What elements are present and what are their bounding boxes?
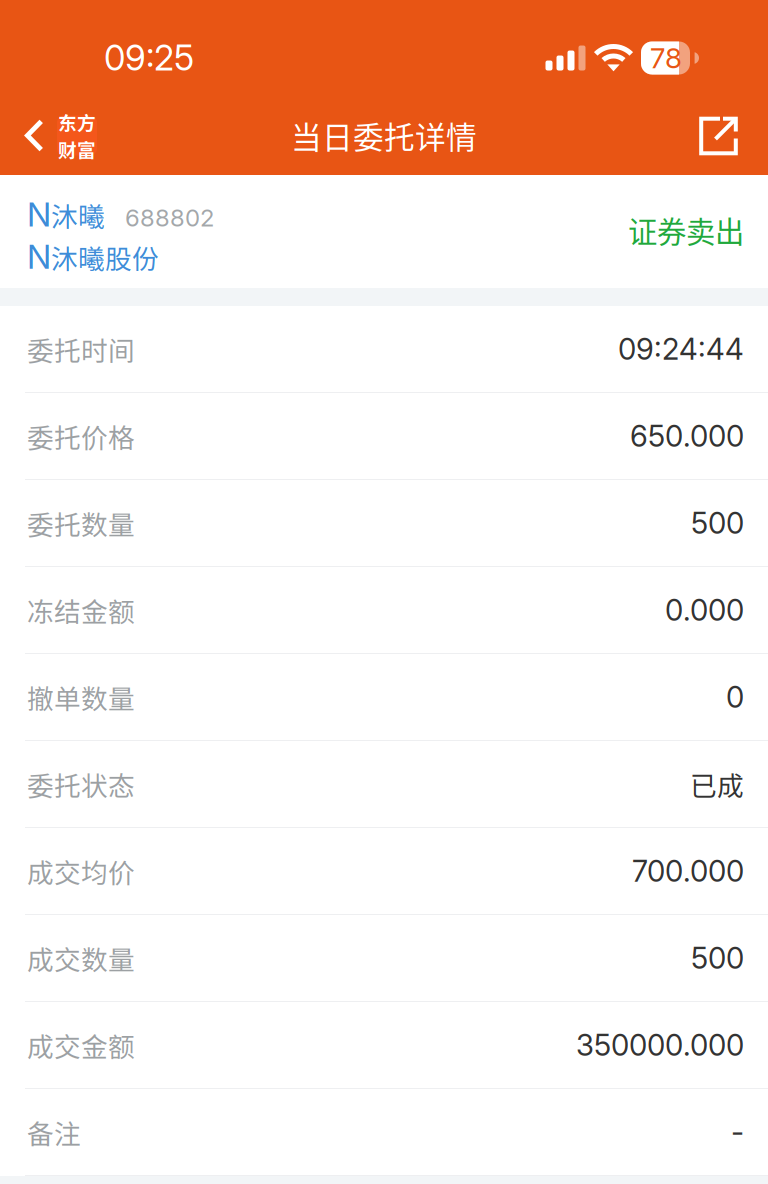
staticText: 委托状态 xyxy=(27,765,135,803)
staticText: 09:24:44 xyxy=(618,331,744,367)
staticText: 当日委托详情 xyxy=(291,113,477,158)
staticText: 500 xyxy=(691,505,744,541)
staticText: N沐曦 xyxy=(27,195,105,234)
staticText: 冻结金额 xyxy=(27,591,135,629)
staticText: 700.000 xyxy=(632,853,744,889)
staticText: 688802 xyxy=(125,203,214,232)
staticText: 撤单数量 xyxy=(27,678,135,716)
staticText: 备注 xyxy=(27,1113,81,1151)
staticText: 0.000 xyxy=(665,592,744,628)
staticText: 650.000 xyxy=(630,418,744,454)
staticText: 成交均价 xyxy=(27,852,135,890)
staticText: 委托时间 xyxy=(27,330,135,368)
staticText: - xyxy=(731,1114,744,1150)
staticText: 成交数量 xyxy=(27,939,135,977)
staticText: 500 xyxy=(691,940,744,976)
staticText: 成交金额 xyxy=(27,1026,135,1064)
button[interactable]: 分享 xyxy=(675,97,768,174)
staticText: 委托数量 xyxy=(27,504,135,542)
staticText: 财富 xyxy=(58,135,96,162)
staticText: 证券卖出 xyxy=(628,209,744,251)
staticText: 350000.000 xyxy=(576,1027,744,1063)
staticText: 东方 xyxy=(58,108,96,135)
staticText: 78 xyxy=(650,41,682,75)
staticText: 09:25 xyxy=(104,37,194,79)
staticText: 0 xyxy=(726,679,744,715)
staticText: 已成 xyxy=(690,765,744,803)
button[interactable]: 返回东方财富 xyxy=(0,97,113,174)
staticText: 委托价格 xyxy=(27,417,135,455)
staticText: N沐曦股份 xyxy=(27,237,159,276)
